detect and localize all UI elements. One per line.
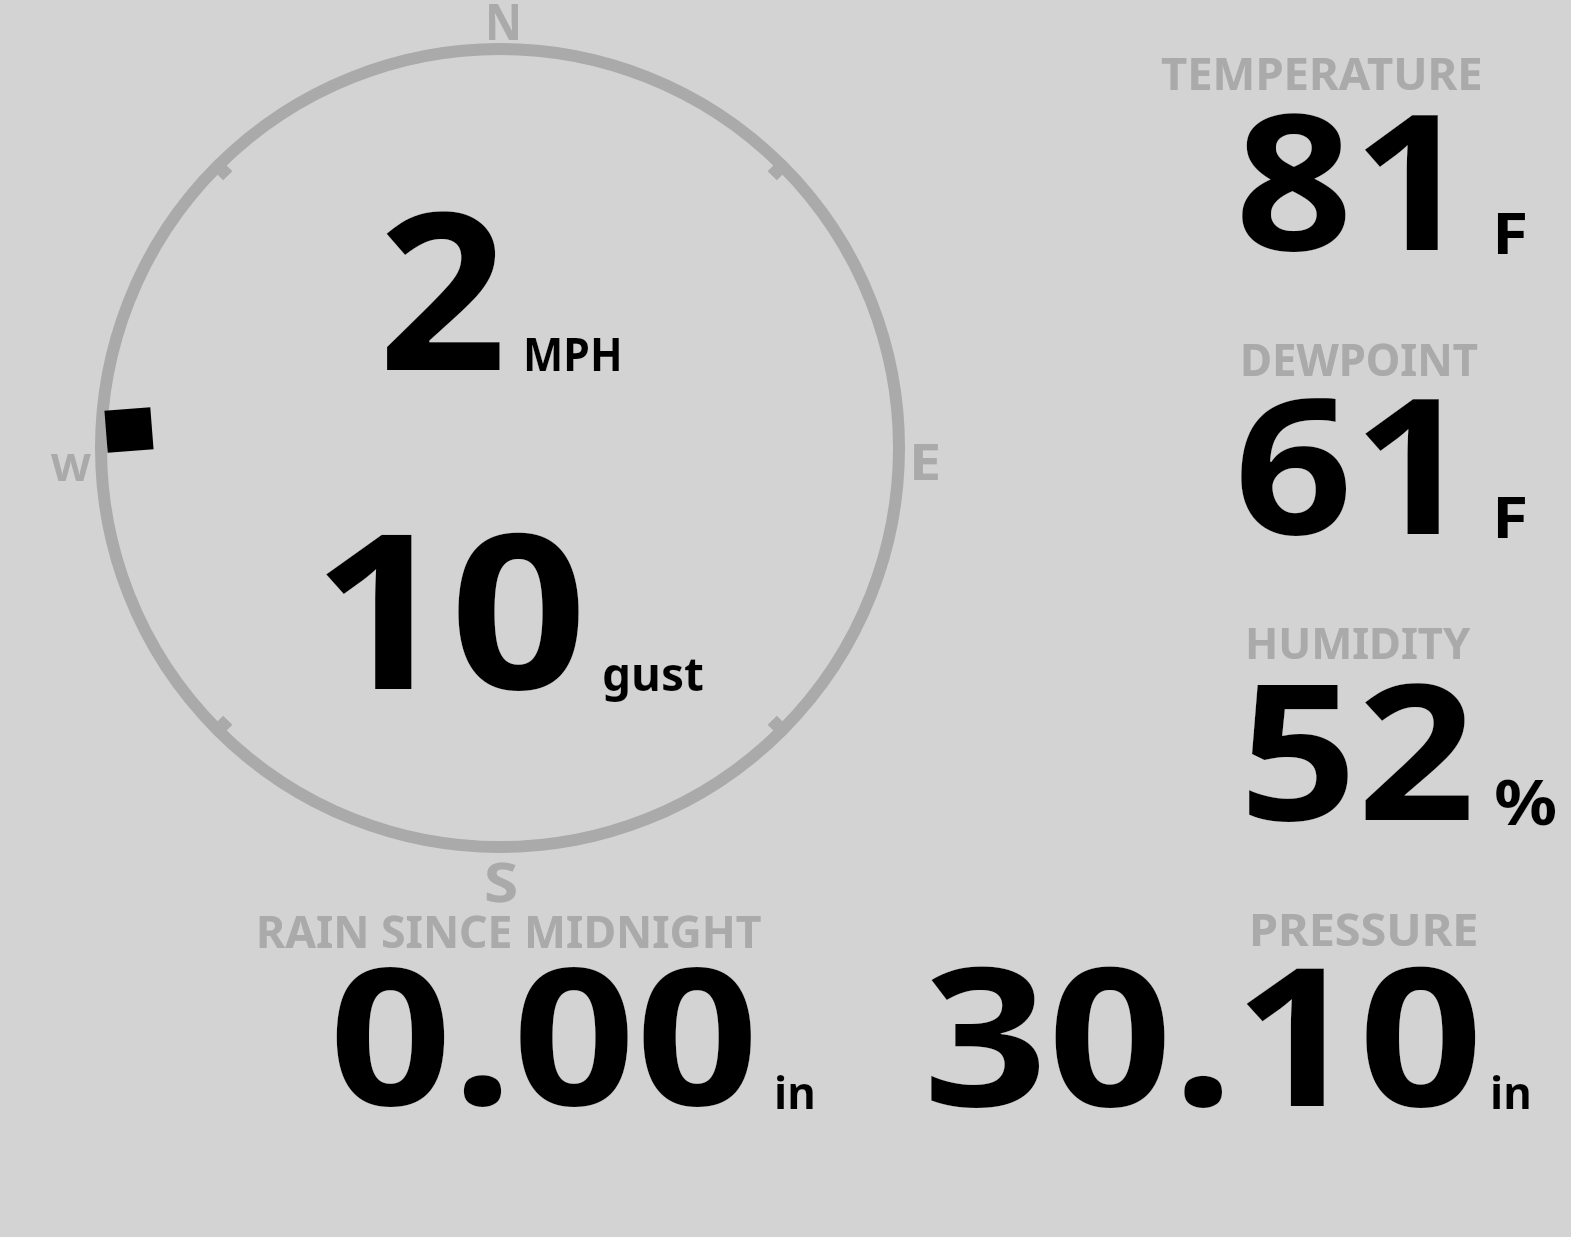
staticText: 30.10 [923,900,1483,1163]
staticText: W [51,440,91,492]
staticText: PRESSURE [1249,898,1479,959]
staticText: in [774,1062,816,1122]
staticText: DEWPOINT [1240,327,1478,389]
button[interactable]: Humidity 52 percent [1150,614,1490,844]
staticText: E [909,427,941,495]
staticText: 2 [378,136,508,434]
staticText: 61 [1234,332,1473,589]
staticText: S [484,844,518,918]
other: Wind direction dial [0,0,1571,1237]
button[interactable]: Dewpoint 61 degrees Fahrenheit [1150,330,1490,560]
staticText: RAIN SINCE MIDNIGHT [256,900,762,961]
button[interactable]: Wind 2 miles per hour, gusting 10 [96,44,904,852]
button[interactable]: Temperature 81 degrees Fahrenheit [1150,44,1490,274]
staticText: 81 [1235,48,1471,305]
staticText: gust [602,642,705,705]
staticText: 52 [1239,619,1477,875]
button[interactable]: Rain since midnight 0.00 inches [250,900,830,1125]
button[interactable]: Pressure 30.10 inches [900,900,1500,1125]
staticText: F [1492,192,1528,271]
staticText: in [1490,1062,1532,1122]
staticText: TEMPERATURE [1161,42,1483,103]
staticText: HUMIDITY [1245,612,1471,671]
staticText: MPH [523,322,623,385]
staticText: F [1492,476,1528,555]
staticText: 0.00 [329,901,759,1160]
staticText: % [1494,759,1557,843]
staticText: 10 [312,459,587,752]
staticText: N [485,0,522,55]
